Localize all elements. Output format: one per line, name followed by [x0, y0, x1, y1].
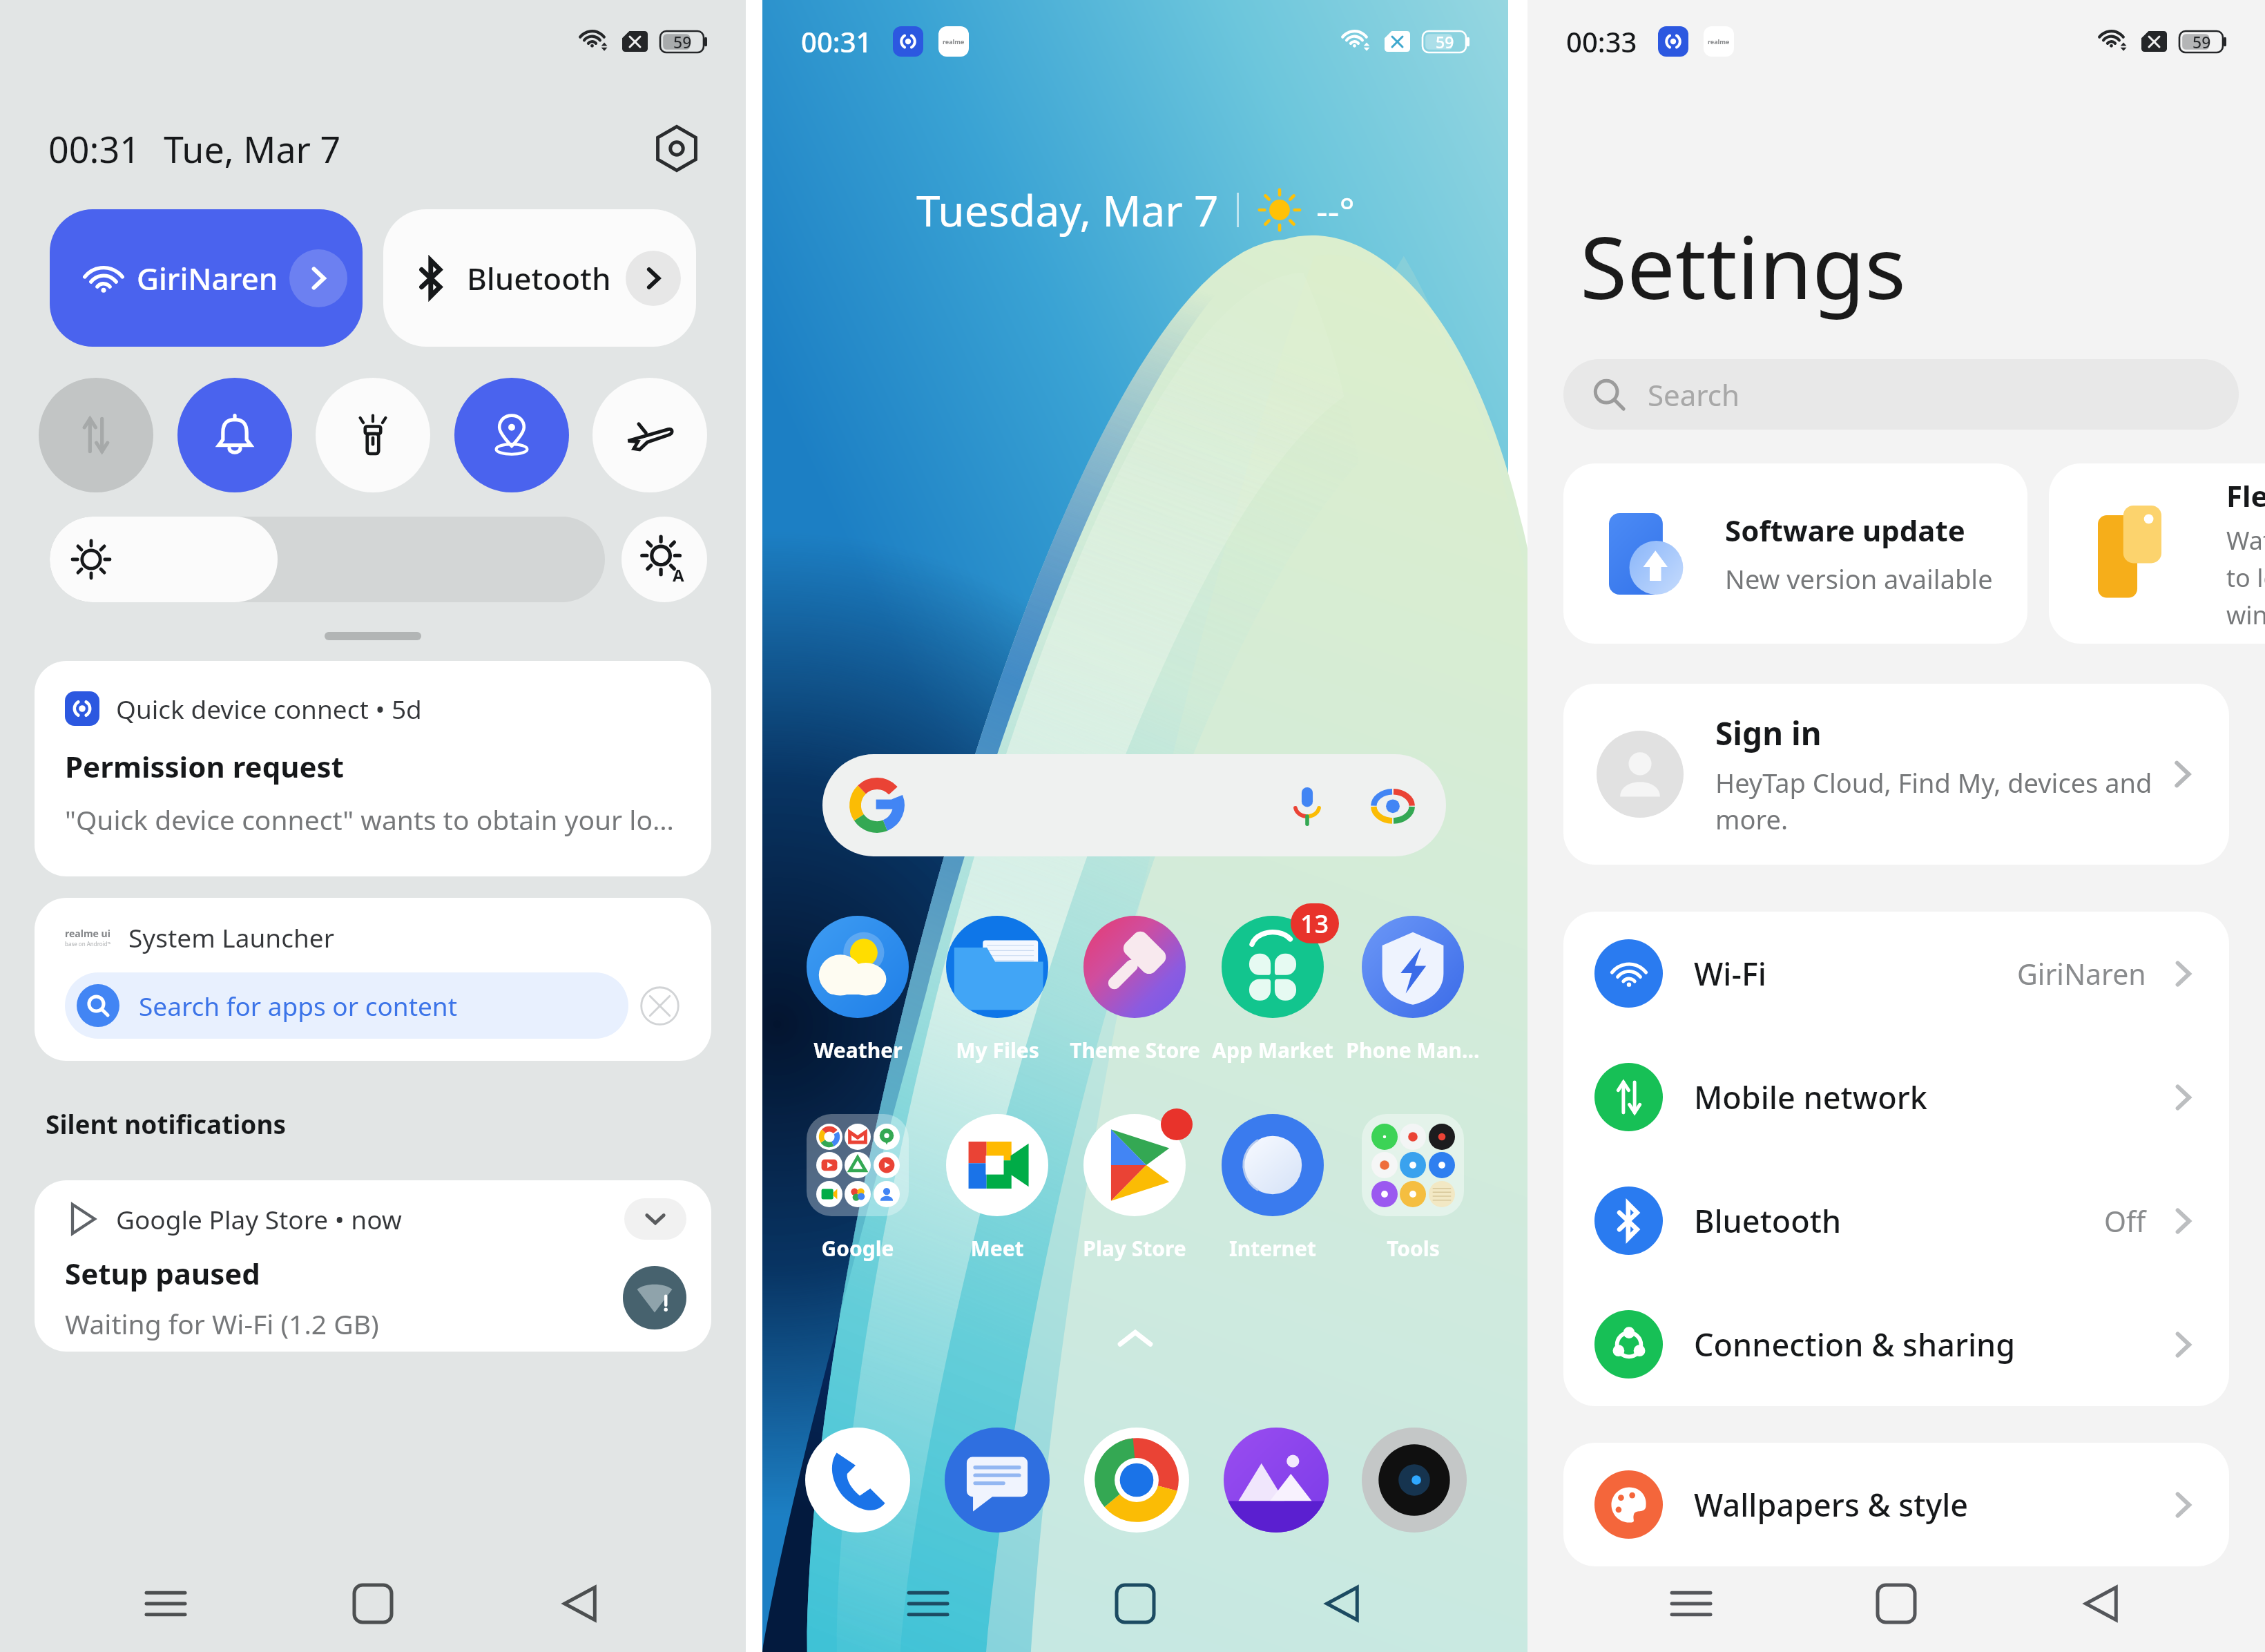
staticText: Theme Store — [1070, 1036, 1200, 1064]
button[interactable]: Mobile network — [1563, 1035, 2229, 1159]
staticText: Silent notifications — [46, 1106, 287, 1141]
button[interactable]: Back — [539, 1562, 621, 1645]
staticText: New version available — [1725, 561, 1993, 597]
staticText: Quick device connect • 5d — [116, 691, 422, 726]
button[interactable]: Recents — [887, 1562, 970, 1645]
staticText: Google — [821, 1234, 894, 1262]
button[interactable]: Internet — [1205, 1114, 1340, 1262]
button[interactable]: My Files — [929, 916, 1065, 1064]
button[interactable]: Google — [790, 1114, 925, 1262]
staticText: Mobile network — [1694, 1076, 1927, 1118]
button[interactable]: Wi-Fi — [1563, 912, 2229, 1035]
staticText: realme ui — [65, 927, 110, 940]
staticText: 00:33 — [1566, 23, 1637, 60]
staticText: Setup paused — [65, 1254, 260, 1293]
button[interactable]: Quick toggle — [177, 378, 292, 492]
staticText: Meet — [970, 1234, 1024, 1262]
staticText: System Launcher — [128, 920, 334, 954]
button[interactable]: Connection & sharing — [1563, 1283, 2229, 1406]
staticText: Bluetooth — [467, 258, 611, 299]
staticText: realme — [943, 37, 965, 46]
staticText: Permission request — [65, 747, 344, 786]
button[interactable]: Quick toggle — [454, 378, 569, 492]
staticText: 00:31 — [48, 124, 140, 173]
button[interactable]: Search — [1563, 359, 2239, 430]
button[interactable]: Recents — [124, 1562, 207, 1645]
button[interactable]: Quick device connect • 5d — [35, 661, 711, 876]
staticText: --° — [1316, 186, 1355, 235]
staticText: Flexible windows — [2226, 476, 2265, 515]
button[interactable]: realme ui — [35, 898, 711, 1061]
button[interactable]: Software update — [1563, 463, 2027, 644]
staticText: Search for apps or content — [139, 988, 458, 1023]
button[interactable]: Weather — [790, 916, 925, 1064]
button[interactable]: Flexible windows — [2049, 463, 2265, 644]
staticText: realme — [1708, 37, 1730, 46]
staticText: 59 — [2192, 31, 2211, 52]
staticText: App Market — [1212, 1036, 1333, 1064]
staticText: GiriNaren — [137, 258, 278, 299]
button[interactable]: Google Play Store • now — [35, 1180, 711, 1352]
button[interactable]: Wallpapers & style — [1563, 1443, 2229, 1566]
staticText: Wi-Fi — [1694, 952, 1766, 995]
button[interactable]: Play Store — [1067, 1114, 1202, 1262]
staticText: Tue, Mar 7 — [164, 124, 341, 173]
button[interactable]: Home — [331, 1562, 414, 1645]
button[interactable]: Sign in — [1563, 684, 2229, 865]
staticText: Software update — [1725, 510, 1965, 550]
button[interactable]: App — [1084, 1428, 1189, 1533]
staticText: Bluetooth — [1694, 1200, 1842, 1242]
staticText: 13 — [1300, 907, 1329, 941]
button[interactable]: Dismiss — [638, 984, 681, 1027]
staticText: 59 — [673, 31, 692, 52]
staticText: Settings — [1580, 207, 1906, 324]
button[interactable]: Bluetooth — [1563, 1159, 2229, 1283]
staticText: Play Store — [1083, 1234, 1186, 1262]
staticText: "Quick device connect" wants to obtain y… — [65, 801, 674, 838]
staticText: Sign in — [1715, 711, 1822, 755]
button[interactable]: Expand — [624, 1198, 686, 1240]
button[interactable]: Quick settings options — [648, 119, 706, 177]
staticText: Wallpapers & style — [1694, 1483, 1969, 1526]
staticText: Internet — [1229, 1234, 1316, 1262]
staticText: GiriNaren — [2017, 954, 2146, 993]
button[interactable]: 13 — [1205, 916, 1340, 1064]
button[interactable]: Tools — [1345, 1114, 1481, 1262]
staticText: HeyTap Cloud, Find My, devices and more. — [1715, 765, 2152, 838]
button[interactable]: Back — [1301, 1562, 1384, 1645]
button[interactable]: Quick toggle — [592, 378, 707, 492]
button[interactable]: Home — [1855, 1562, 1938, 1645]
button[interactable]: Meet — [929, 1114, 1065, 1262]
staticText: Tuesday, Mar 7 — [916, 181, 1219, 239]
staticText: My Files — [956, 1036, 1039, 1064]
staticText: 59 — [1436, 31, 1454, 52]
staticText: Off — [2104, 1202, 2146, 1240]
staticText: A — [673, 564, 684, 586]
button[interactable]: Phone Man… — [1345, 916, 1481, 1064]
staticText: Weather — [813, 1036, 903, 1064]
button[interactable]: Home — [1094, 1562, 1177, 1645]
staticText: Connection & sharing — [1694, 1323, 2016, 1365]
staticText: Waiting for Wi-Fi (1.2 GB) — [65, 1305, 379, 1342]
staticText: 00:31 — [801, 23, 872, 60]
button[interactable]: Recents — [1650, 1562, 1733, 1645]
staticText: Search — [1648, 375, 1739, 414]
staticText: Tools — [1387, 1234, 1440, 1262]
button[interactable]: Quick toggle — [39, 378, 153, 492]
staticText: Phone Man… — [1346, 1036, 1480, 1064]
button[interactable] — [822, 754, 1446, 856]
button[interactable]: Theme Store — [1067, 916, 1202, 1064]
button[interactable]: Back — [2060, 1562, 2143, 1645]
staticText: Watch the video to learn about flexible … — [2226, 524, 2265, 632]
button[interactable]: App — [945, 1428, 1050, 1533]
button[interactable]: Auto brightness — [621, 517, 707, 602]
button[interactable]: App — [805, 1428, 910, 1533]
staticText: Google Play Store • now — [116, 1202, 402, 1236]
button[interactable]: Brightness — [50, 517, 605, 602]
button[interactable]: Search for apps or content — [65, 972, 628, 1039]
button[interactable]: Bluetooth — [383, 209, 696, 347]
button[interactable]: App — [1224, 1428, 1329, 1533]
button[interactable]: GiriNaren — [50, 209, 363, 347]
button[interactable]: App — [1362, 1428, 1467, 1533]
button[interactable]: Quick toggle — [316, 378, 430, 492]
